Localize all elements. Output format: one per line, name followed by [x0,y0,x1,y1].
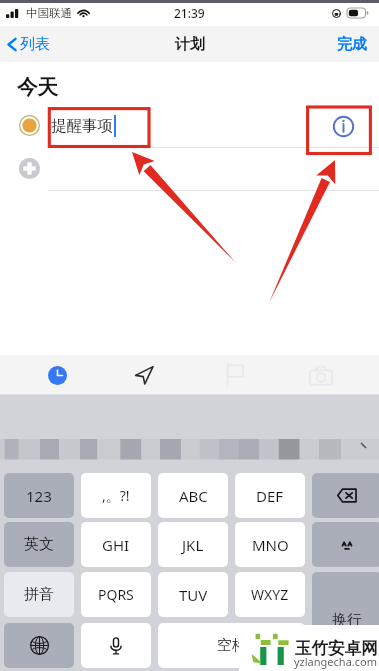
staticText: ABC [179,486,208,506]
button[interactable]: 拼音 [4,572,74,617]
staticText: 换行 [332,611,362,630]
staticText: 今天 [17,74,58,100]
button[interactable]: 换行 [312,572,379,669]
button[interactable]: 提醒事项 [0,104,379,147]
staticText: JKL [182,535,204,555]
button[interactable]: Details [322,105,365,148]
button[interactable]: ,。?! [81,473,151,518]
staticText: PQRS [98,585,134,604]
staticText: 拼音 [24,585,54,604]
button[interactable]: DEF [235,473,305,518]
button[interactable]: 英文 [4,522,74,567]
staticText: 英文 [24,535,54,554]
staticText: 提醒事项 [51,116,113,136]
staticText: yzlangecha.com [294,654,377,669]
button[interactable]: 空格 [158,623,305,668]
button[interactable]: MNO [235,522,305,567]
button[interactable]: PQRS [81,572,151,617]
button[interactable]: Today [33,355,81,395]
staticText: MNO [252,535,289,555]
button[interactable]: Switch keyboard [4,623,74,668]
staticText: 21:39 [174,5,205,21]
staticText: 中国联通 [26,6,72,20]
button[interactable]: JKL [158,522,228,567]
staticText: 123 [26,486,52,506]
staticText: 空格 [217,636,247,655]
staticText: DEF [256,486,284,506]
button[interactable]: WXYZ [235,572,305,617]
staticText: WXYZ [251,585,289,604]
staticText: 计划 [175,35,205,54]
button[interactable]: Delete [312,473,379,518]
button[interactable]: TUV [158,572,228,617]
button[interactable]: Location [120,355,168,395]
button[interactable]: Emoticons [312,522,379,567]
button[interactable]: 列表 [0,35,58,54]
staticText: 完成 [337,35,367,54]
staticText: GHI [102,535,130,555]
button[interactable]: ABC [158,473,228,518]
button[interactable] [0,147,379,190]
staticText: ,。?! [102,486,130,505]
button[interactable]: 123 [4,473,74,518]
staticText: TUV [179,585,208,605]
staticText: 列表 [20,35,50,54]
button[interactable]: 完成 [325,29,379,60]
staticText: 玉竹安卓网 [295,638,378,659]
button[interactable]: Flag [210,355,258,395]
button[interactable]: Camera [297,355,345,395]
button[interactable]: Dictation [81,623,151,668]
button[interactable]: GHI [81,522,151,567]
